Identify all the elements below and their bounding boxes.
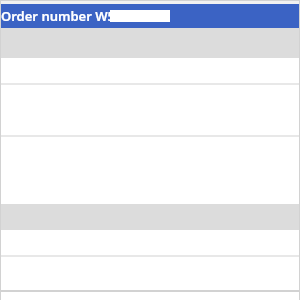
button[interactable] (0, 58, 300, 83)
button[interactable] (0, 257, 300, 290)
staticText: Order number W5 (1, 7, 116, 25)
button[interactable] (0, 230, 300, 255)
button[interactable] (0, 137, 300, 204)
button[interactable] (0, 85, 300, 135)
button[interactable]: Order number W5 (0, 4, 300, 28)
